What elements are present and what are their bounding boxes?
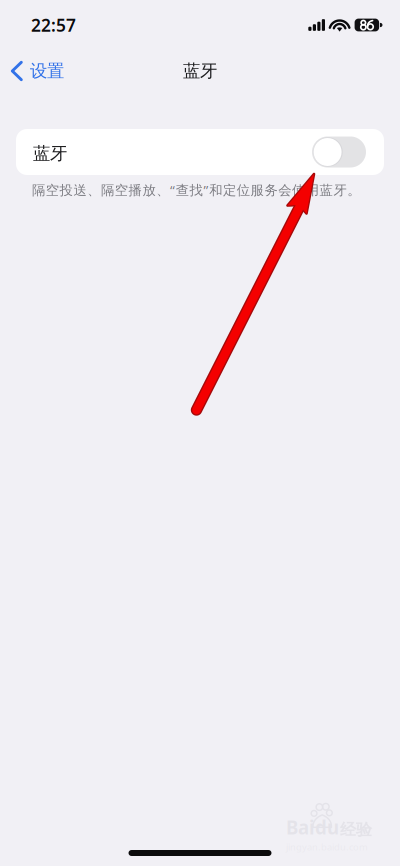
staticText: 蓝牙 — [33, 143, 67, 164]
staticText: 隔空投送、隔空播放、“查找”和定位服务会使用蓝牙。 — [32, 181, 360, 199]
staticText: 蓝牙 — [183, 60, 217, 82]
button[interactable]: 设置 — [0, 50, 76, 92]
staticText: 22:57 — [31, 13, 76, 36]
staticText: 设置 — [30, 60, 64, 82]
staticText: 经验 — [340, 820, 372, 840]
button[interactable]: 蓝牙 — [16, 129, 384, 175]
staticText: Baidu — [286, 815, 339, 840]
